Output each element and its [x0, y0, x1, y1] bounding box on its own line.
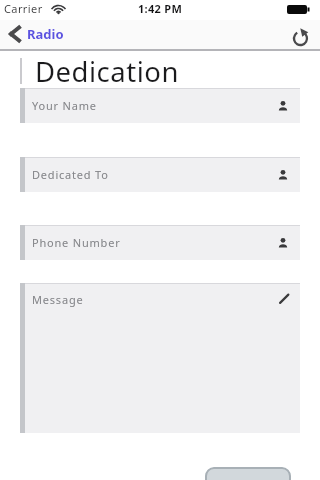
staticText: Dedicated To [32, 167, 109, 182]
button[interactable] [205, 467, 291, 480]
staticText: Phone Number [32, 235, 121, 250]
staticText: Dedication [35, 53, 179, 90]
button[interactable]: Radio [0, 25, 64, 43]
button[interactable]: Phone Number [20, 225, 300, 260]
button[interactable]: Your Name [20, 88, 300, 123]
staticText: Your Name [32, 98, 97, 113]
button[interactable]: Message [20, 283, 300, 433]
button[interactable]: Dedicated To [20, 157, 300, 192]
staticText: Message [32, 292, 84, 307]
button[interactable] [292, 29, 309, 46]
staticText: Radio [27, 25, 64, 43]
staticText: Carrier [4, 1, 43, 16]
staticText: 1:42 PM [0, 1, 320, 16]
